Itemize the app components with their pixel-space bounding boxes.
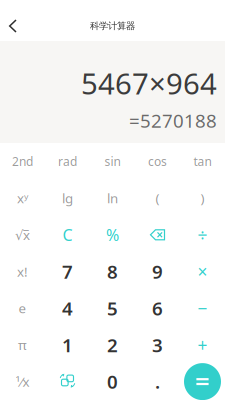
button[interactable]: rad	[45, 143, 90, 180]
button[interactable]: e	[0, 290, 45, 327]
button[interactable]: cos	[135, 143, 180, 180]
button[interactable]: −	[180, 290, 225, 327]
staticText: ÷	[197, 223, 207, 246]
staticText: 4	[62, 296, 73, 321]
staticText: xʸ	[17, 189, 28, 207]
button[interactable]: 9	[135, 253, 180, 290]
staticText: √x̅	[15, 226, 30, 244]
staticText: lg	[62, 189, 73, 207]
button[interactable]: sin	[90, 143, 135, 180]
button[interactable]: C	[45, 216, 90, 253]
button[interactable]: )	[180, 180, 225, 216]
button[interactable]: Unit convert	[45, 363, 90, 400]
staticText: 2nd	[12, 153, 33, 169]
staticText: 3	[152, 332, 163, 357]
staticText: 8	[107, 259, 118, 284]
button[interactable]: 8	[90, 253, 135, 290]
button[interactable]: 3	[135, 327, 180, 363]
button[interactable]: 0	[90, 363, 135, 400]
button[interactable]: 4	[45, 290, 90, 327]
button[interactable]: 2	[90, 327, 135, 363]
staticText: ×	[197, 260, 207, 283]
staticText: 0	[107, 369, 118, 394]
staticText: e	[18, 299, 26, 317]
button[interactable]: 2nd	[0, 143, 45, 180]
button[interactable]: (	[135, 180, 180, 216]
staticText: cos	[148, 153, 167, 169]
button[interactable]: tan	[180, 143, 225, 180]
button[interactable]: lg	[45, 180, 90, 216]
staticText: (	[155, 189, 159, 207]
button[interactable]: π	[0, 327, 45, 363]
staticText: 9	[152, 259, 163, 284]
staticText: ln	[107, 189, 118, 207]
staticText: =5270188	[129, 108, 217, 133]
staticText: )	[200, 189, 204, 207]
staticText: π	[18, 336, 27, 354]
staticText: %	[106, 224, 119, 245]
button[interactable]: ¹⁄x	[0, 363, 45, 400]
staticText: 7	[62, 259, 73, 284]
staticText: rad	[58, 153, 77, 169]
staticText: 2	[107, 332, 118, 357]
button[interactable]: 5	[90, 290, 135, 327]
button[interactable]: 6	[135, 290, 180, 327]
button[interactable]: ÷	[180, 216, 225, 253]
button[interactable]: ×	[180, 253, 225, 290]
button[interactable]: +	[180, 327, 225, 363]
staticText: tan	[193, 153, 211, 169]
staticText: 1	[62, 332, 73, 357]
staticText: +	[197, 333, 207, 356]
staticText: x!	[17, 263, 28, 280]
button[interactable]: √x̅	[0, 216, 45, 253]
staticText: ¹⁄x	[15, 373, 29, 390]
staticText: 5467×964	[81, 63, 217, 102]
button[interactable]: Equals	[180, 363, 225, 400]
button[interactable]: xʸ	[0, 180, 45, 216]
staticText: C	[62, 224, 72, 245]
staticText: .	[155, 369, 160, 394]
button[interactable]: Back	[0, 11, 26, 41]
staticText: 6	[152, 296, 163, 321]
button[interactable]: 1	[45, 327, 90, 363]
button[interactable]: Delete	[135, 216, 180, 253]
button[interactable]: ln	[90, 180, 135, 216]
staticText: 科学计算器	[90, 20, 135, 32]
button[interactable]: .	[135, 363, 180, 400]
staticText: sin	[104, 153, 120, 169]
button[interactable]: 7	[45, 253, 90, 290]
button[interactable]: %	[90, 216, 135, 253]
staticText: 5	[107, 296, 118, 321]
staticText: −	[197, 297, 207, 320]
button[interactable]: x!	[0, 253, 45, 290]
